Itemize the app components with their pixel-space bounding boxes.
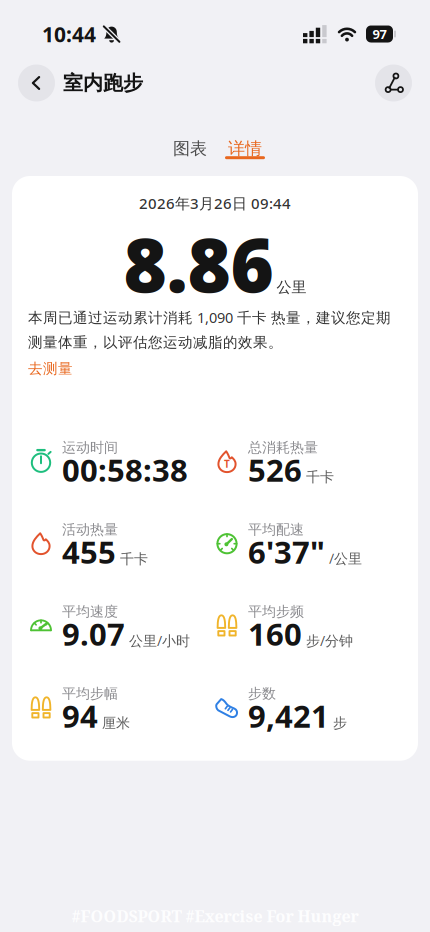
staticText: 步/分钟 — [306, 631, 353, 650]
staticText: 10:44 — [42, 20, 96, 48]
staticText: 平均配速 — [248, 521, 304, 538]
button[interactable]: Share — [375, 64, 412, 101]
staticText: 平均步幅 — [62, 685, 118, 702]
staticText: 总消耗热量 — [248, 439, 318, 456]
staticText: 97 — [372, 25, 386, 43]
staticText: 步数 — [248, 685, 276, 702]
staticText: 详情 — [228, 138, 262, 159]
staticText: #FOODSPORT #Exercise For Hunger — [71, 905, 358, 927]
staticText: 公里 — [276, 278, 306, 297]
staticText: 8.86 — [123, 213, 273, 314]
staticText: 平均速度 — [62, 603, 118, 620]
staticText: 9,421 — [248, 695, 329, 737]
staticText: 2026年3月26日 09:44 — [139, 193, 291, 213]
staticText: 活动热量 — [62, 521, 118, 538]
staticText: 千卡 — [120, 550, 148, 568]
staticText: /公里 — [329, 549, 362, 568]
staticText: 00:58:38 — [62, 449, 188, 491]
staticText: 526 — [248, 449, 302, 491]
staticText: 运动时间 — [62, 439, 118, 456]
staticText: 千卡 — [306, 468, 334, 486]
staticText: 平均步频 — [248, 603, 304, 620]
button[interactable]: 图表 — [173, 138, 207, 159]
staticText: 160 — [248, 613, 302, 655]
staticText: 公里/小时 — [129, 631, 190, 650]
staticText: 步 — [333, 714, 347, 732]
staticText: 9.07 — [62, 613, 125, 655]
staticText: 本周已通过运动累计消耗 1,090 千卡 热量，建议您定期测量体重，以评估您运动… — [28, 307, 391, 351]
staticText: 室内跑步 — [63, 70, 143, 96]
staticText: T — [224, 457, 230, 471]
button[interactable]: 去测量 — [12, 351, 73, 378]
button[interactable]: 详情 — [225, 138, 265, 159]
button[interactable]: Back — [18, 64, 55, 101]
staticText: 厘米 — [102, 714, 130, 732]
staticText: 6'37" — [248, 531, 325, 573]
staticText: 图表 — [173, 138, 207, 159]
staticText: 去测量 — [28, 359, 73, 378]
staticText: 94 — [62, 695, 98, 737]
staticText: 455 — [62, 531, 116, 573]
